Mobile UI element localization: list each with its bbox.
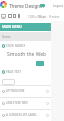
- staticText: LINE ITEM TWO: [6, 101, 28, 105]
- staticText: OPTION ONE: [6, 89, 25, 93]
- button[interactable]: Device preview: [13, 14, 16, 18]
- staticText: CODE FAMILY: [6, 44, 26, 48]
- staticText: A LONGER LIST LABEL: [6, 113, 37, 117]
- button[interactable]: CODE FAMILY: [0, 42, 51, 49]
- button[interactable]: Save theme: [40, 4, 45, 7]
- button[interactable]: LINE ITEM TWO: [0, 97, 51, 109]
- staticText: PAGE TEXT: [6, 70, 21, 74]
- button[interactable]: Device preview: [8, 14, 12, 18]
- staticText: Smooth the Web: [7, 51, 47, 58]
- button[interactable]: PAGE TEXT: [0, 68, 51, 75]
- button[interactable]: Get started: [36, 61, 44, 66]
- staticText: Home: [2, 35, 11, 39]
- button[interactable]: Text field: [2, 79, 15, 85]
- button[interactable]: OPTION ONE: [0, 85, 51, 97]
- staticText: MAIN MENU: [2, 25, 22, 29]
- button[interactable]: A LONGER LIST LABEL: [0, 109, 51, 121]
- button[interactable]: App logo: [0, 1, 7, 8]
- button[interactable]: Desktop preview: [1, 14, 6, 19]
- staticText: Theme Designer: [9, 3, 45, 9]
- staticText: Logout: [53, 4, 63, 8]
- staticText: Reset · Preview: [38, 15, 60, 19]
- staticText: 1280 x 720 px: [28, 15, 47, 19]
